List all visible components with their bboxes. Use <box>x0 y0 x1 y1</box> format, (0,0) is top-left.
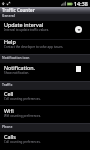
staticText: Interval to update traffic values. <box>4 28 49 32</box>
staticText: Wifi <box>4 107 14 114</box>
button[interactable]: Help <box>0 39 90 54</box>
staticText: Traffic <box>2 82 13 86</box>
staticText: Show notification. <box>4 71 30 75</box>
staticText: Cell <box>4 90 14 97</box>
staticText: Calls <box>4 133 16 140</box>
button[interactable]: Update interval <box>0 20 90 39</box>
staticText: Call counting preferences. <box>4 140 41 144</box>
staticText: Help <box>4 38 16 45</box>
button[interactable]: Calls <box>0 131 90 150</box>
staticText: Wifi counting preferences. <box>4 114 41 118</box>
staticText: General <box>2 13 15 17</box>
staticText: Notification icon <box>2 55 30 59</box>
staticText: Cell counting preferences. <box>4 97 41 101</box>
staticText: Traffic Counter <box>2 7 35 13</box>
button[interactable]: Notification. <box>0 62 90 81</box>
staticText: Contact the developer to solve app issue… <box>4 45 64 49</box>
staticText: Phone <box>2 124 13 128</box>
button[interactable]: Open update interval options <box>75 26 82 33</box>
staticText: Update interval <box>4 21 44 28</box>
staticText: 14:38 <box>74 0 88 7</box>
button[interactable]: Cell <box>0 89 90 105</box>
button[interactable]: Wifi <box>0 105 90 123</box>
staticText: Notification. <box>4 64 35 71</box>
